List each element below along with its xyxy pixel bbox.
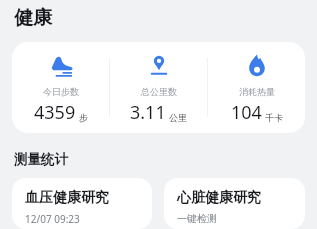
button[interactable]: 血压健康研究 <box>12 178 152 229</box>
staticText: 3.11 <box>130 100 166 125</box>
staticText: 104 <box>231 100 262 125</box>
button[interactable]: 心脏健康研究 <box>164 178 305 229</box>
staticText: 一键检测 <box>177 212 217 225</box>
button[interactable]: Today steps <box>12 42 109 125</box>
staticText: 12/07 09:23 <box>25 212 80 226</box>
staticText: 公里 <box>169 112 187 123</box>
staticText: 心脏健康研究 <box>177 189 261 207</box>
button[interactable]: Calories burned <box>208 42 305 125</box>
staticText: 总公里数 <box>141 86 177 97</box>
staticText: 今日步数 <box>43 86 79 97</box>
button[interactable]: Total distance <box>110 42 207 125</box>
staticText: 健康 <box>14 6 52 30</box>
staticText: 4359 <box>34 100 76 125</box>
staticText: 测量统计 <box>14 151 68 168</box>
staticText: 步 <box>79 112 88 123</box>
staticText: 血压健康研究 <box>25 189 109 207</box>
staticText: 千卡 <box>265 112 283 123</box>
staticText: 消耗热量 <box>239 86 275 97</box>
